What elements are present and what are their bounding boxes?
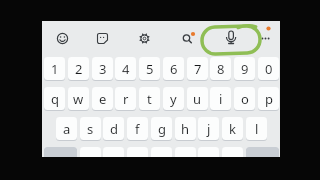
- button[interactable]: o: [234, 87, 255, 110]
- button[interactable]: 7: [187, 57, 208, 80]
- button[interactable]: y: [163, 87, 184, 110]
- button[interactable]: [174, 25, 200, 52]
- button[interactable]: 2: [68, 57, 89, 80]
- button[interactable]: 5: [139, 57, 160, 80]
- button[interactable]: 8: [210, 57, 231, 80]
- button[interactable]: 0: [258, 57, 279, 80]
- staticText: g: [158, 120, 166, 138]
- button[interactable]: q: [44, 87, 65, 110]
- staticText: p: [265, 90, 273, 108]
- staticText: d: [110, 120, 118, 138]
- staticText: 1: [51, 60, 59, 78]
- staticText: a: [63, 120, 71, 138]
- staticText: w: [73, 90, 84, 108]
- button[interactable]: e: [92, 87, 113, 110]
- staticText: t: [147, 90, 152, 108]
- button[interactable]: 1: [44, 57, 65, 80]
- button[interactable]: [218, 25, 244, 52]
- button[interactable]: [253, 25, 279, 52]
- button[interactable]: 3: [92, 57, 113, 80]
- button[interactable]: d: [103, 117, 124, 140]
- staticText: 3: [99, 60, 107, 78]
- staticText: h: [181, 120, 190, 138]
- staticText: r: [123, 90, 129, 108]
- staticText: 0: [265, 60, 273, 78]
- staticText: e: [99, 90, 107, 108]
- button[interactable]: a: [56, 117, 77, 140]
- button[interactable]: r: [115, 87, 136, 110]
- button[interactable]: [90, 25, 116, 52]
- button[interactable]: l: [246, 117, 267, 140]
- staticText: o: [241, 90, 249, 108]
- button[interactable]: w: [68, 87, 89, 110]
- staticText: q: [51, 90, 59, 108]
- button[interactable]: h: [175, 117, 196, 140]
- staticText: i: [219, 90, 223, 108]
- staticText: 6: [170, 60, 178, 78]
- staticText: 5: [146, 60, 154, 78]
- button[interactable]: k: [222, 117, 243, 140]
- staticText: s: [87, 120, 94, 138]
- button[interactable]: j: [198, 117, 219, 140]
- button[interactable]: 4: [115, 57, 136, 80]
- staticText: j: [207, 120, 211, 138]
- button[interactable]: g: [151, 117, 172, 140]
- button[interactable]: u: [187, 87, 208, 110]
- button[interactable]: [44, 147, 77, 157]
- button[interactable]: [50, 25, 76, 52]
- staticText: 7: [194, 60, 202, 78]
- staticText: 9: [241, 60, 249, 78]
- staticText: l: [255, 120, 259, 138]
- staticText: k: [229, 120, 236, 138]
- staticText: f: [135, 120, 140, 138]
- button[interactable]: 6: [163, 57, 184, 80]
- button[interactable]: p: [258, 87, 279, 110]
- button[interactable]: i: [210, 87, 231, 110]
- staticText: 2: [75, 60, 83, 78]
- button[interactable]: f: [127, 117, 148, 140]
- button[interactable]: t: [139, 87, 160, 110]
- staticText: 4: [122, 60, 130, 78]
- button[interactable]: [132, 25, 158, 52]
- staticText: y: [170, 90, 177, 108]
- button[interactable]: 9: [234, 57, 255, 80]
- staticText: u: [193, 90, 202, 108]
- button[interactable]: s: [80, 117, 101, 140]
- button[interactable]: [246, 147, 279, 157]
- staticText: 8: [217, 60, 225, 78]
